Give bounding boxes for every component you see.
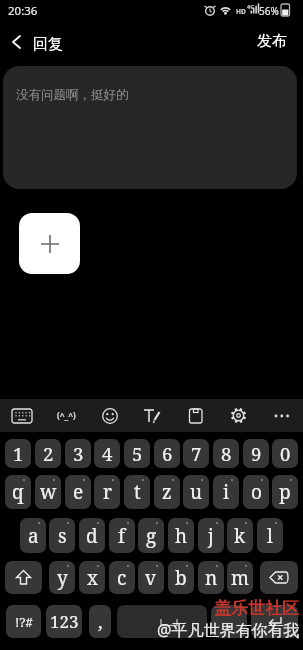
staticText: 5	[132, 441, 143, 466]
button[interactable]: .	[211, 605, 247, 638]
button[interactable]: s	[49, 518, 75, 553]
staticText: 0	[280, 441, 291, 466]
staticText: g	[146, 523, 157, 549]
button[interactable]: a	[20, 518, 46, 553]
button[interactable]	[88, 399, 131, 432]
staticText: i	[223, 479, 230, 505]
staticText: 1	[13, 441, 24, 466]
staticText: s	[58, 523, 67, 549]
staticText: 盖乐世社区	[214, 598, 299, 619]
staticText: v	[145, 565, 157, 591]
button[interactable]	[117, 605, 207, 638]
button[interactable]	[2, 28, 32, 56]
button[interactable]: w	[35, 475, 61, 509]
staticText: z	[162, 479, 172, 505]
button[interactable]: 1	[5, 439, 31, 468]
staticText: t	[134, 479, 141, 505]
button[interactable]	[5, 561, 42, 594]
staticText: !?#	[15, 613, 33, 631]
button[interactable]: d	[79, 518, 105, 553]
button[interactable]: x	[79, 561, 105, 594]
staticText: 发布	[257, 32, 287, 51]
button[interactable]	[19, 213, 80, 274]
button[interactable]: ,	[89, 605, 111, 638]
button[interactable]	[260, 561, 298, 594]
button[interactable]: y	[49, 561, 75, 594]
staticText: 20:36	[8, 3, 38, 19]
staticText: h	[175, 523, 188, 549]
button[interactable]: p	[272, 475, 298, 509]
button[interactable]: r	[94, 475, 120, 509]
staticText: 4	[102, 441, 113, 466]
button[interactable]	[0, 399, 44, 432]
staticText: 7	[191, 441, 202, 466]
button[interactable]: 123	[46, 605, 82, 638]
button[interactable]	[260, 399, 303, 432]
button[interactable]: k	[227, 518, 253, 553]
staticText: l	[267, 523, 273, 549]
button[interactable]: 0	[272, 439, 298, 468]
staticText: f	[118, 523, 126, 549]
button[interactable]: f	[109, 518, 135, 553]
button[interactable]: 9	[243, 439, 269, 468]
button[interactable]	[251, 605, 298, 638]
button[interactable]: m	[227, 561, 253, 594]
staticText: x	[87, 565, 98, 591]
staticText: ,	[98, 609, 103, 634]
button[interactable]: t	[124, 475, 150, 509]
staticText: q	[12, 479, 24, 505]
staticText: 8	[221, 441, 232, 466]
button[interactable]: z	[154, 475, 180, 509]
staticText: b	[175, 565, 187, 591]
button[interactable]: 2	[35, 439, 61, 468]
button[interactable]	[131, 399, 174, 432]
button[interactable]: n	[198, 561, 224, 594]
button[interactable]: 8	[213, 439, 239, 468]
staticText: 没有问题啊，挺好的	[16, 87, 129, 103]
staticText: p	[279, 479, 291, 505]
staticText: @平凡世界有你有我	[157, 619, 300, 641]
button[interactable]: q	[5, 475, 31, 509]
button[interactable]: l	[257, 518, 283, 553]
button[interactable]: 6	[154, 439, 180, 468]
button[interactable]: c	[109, 561, 135, 594]
staticText: c	[117, 565, 127, 591]
staticText: 4G	[247, 3, 255, 10]
button[interactable]: 4	[94, 439, 120, 468]
staticText: m	[231, 565, 249, 591]
button[interactable]: 5	[124, 439, 150, 468]
button[interactable]: !?#	[6, 605, 41, 638]
staticText: w	[40, 479, 57, 505]
staticText: o	[251, 479, 262, 505]
button[interactable]: u	[183, 475, 209, 509]
staticText: 回复	[33, 35, 63, 54]
button[interactable]: i	[213, 475, 239, 509]
staticText: e	[73, 479, 84, 505]
staticText: k	[234, 523, 246, 549]
button[interactable]: o	[243, 475, 269, 509]
button[interactable]: b	[168, 561, 194, 594]
button[interactable]: v	[138, 561, 164, 594]
staticText: 56%	[259, 4, 279, 18]
staticText: 2	[43, 441, 54, 466]
button[interactable]: g	[138, 518, 164, 553]
button[interactable]: h	[168, 518, 194, 553]
staticText: 3	[73, 441, 84, 466]
button[interactable]	[217, 399, 260, 432]
staticText: 123	[50, 610, 79, 633]
staticText: 9	[251, 441, 262, 466]
button[interactable]: 发布	[257, 32, 287, 51]
staticText: u	[190, 479, 203, 505]
staticText: 6	[162, 441, 173, 466]
staticText: HD	[236, 7, 246, 16]
staticText: a	[28, 523, 39, 549]
button[interactable]	[174, 399, 217, 432]
button[interactable]: j	[198, 518, 224, 553]
button[interactable]: 3	[65, 439, 91, 468]
button[interactable]: 没有问题啊，挺好的	[3, 66, 297, 189]
staticText: .	[227, 609, 232, 634]
staticText: j	[208, 523, 214, 549]
button[interactable]: 7	[183, 439, 209, 468]
button[interactable]: (^_^)	[44, 399, 88, 432]
button[interactable]: e	[65, 475, 91, 509]
